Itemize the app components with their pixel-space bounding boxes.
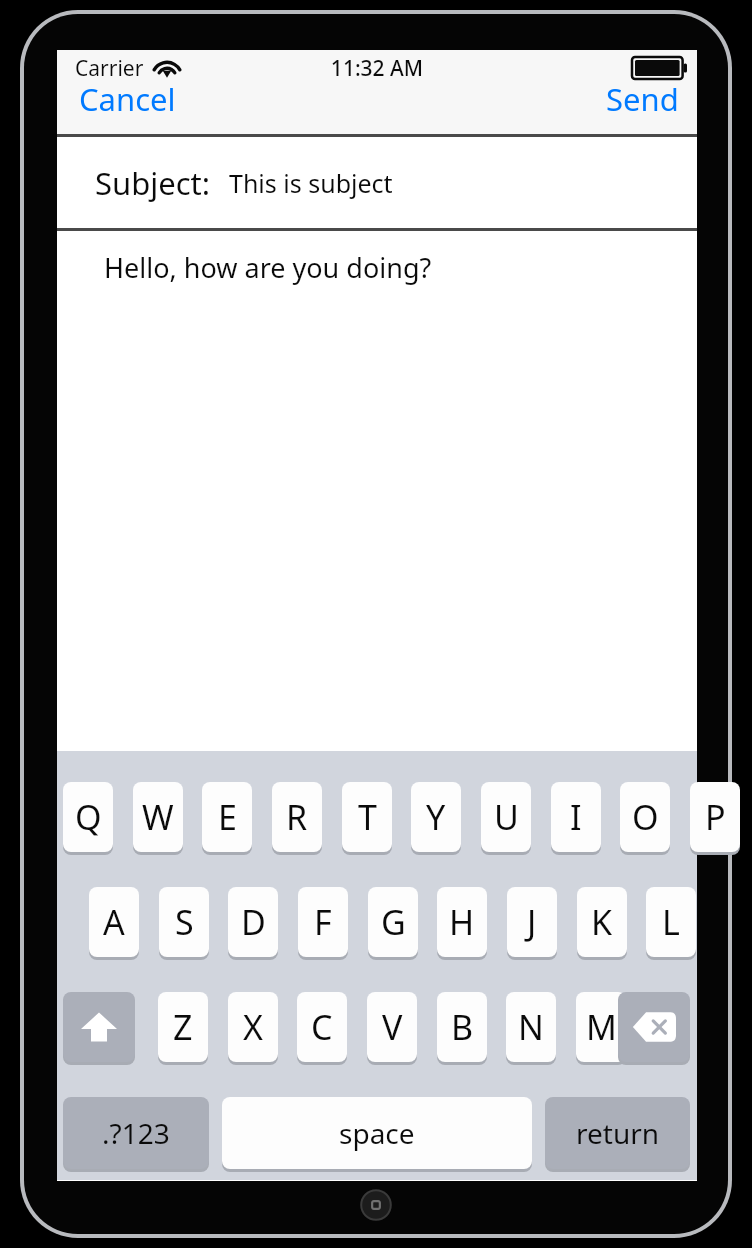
staticText: L: [662, 899, 680, 945]
staticText: N: [518, 1004, 544, 1050]
button[interactable]: V: [367, 992, 417, 1062]
staticText: .?123: [102, 1114, 170, 1152]
button[interactable]: G: [368, 887, 418, 957]
button[interactable]: Subject:: [57, 137, 697, 228]
staticText: S: [175, 899, 194, 945]
button[interactable]: Cancel: [75, 76, 180, 122]
staticText: U: [494, 794, 519, 840]
button[interactable]: F: [298, 887, 348, 957]
staticText: A: [103, 899, 125, 945]
staticText: Z: [173, 1004, 193, 1050]
button[interactable]: space: [222, 1097, 532, 1169]
button[interactable]: T: [342, 782, 392, 852]
staticText: Send: [606, 78, 679, 120]
button[interactable]: Q: [63, 782, 113, 852]
button[interactable]: Y: [411, 782, 461, 852]
staticText: 11:32 AM: [57, 54, 697, 83]
staticText: Carrier: [75, 54, 144, 83]
button[interactable]: L: [646, 887, 696, 957]
button[interactable]: I: [551, 782, 601, 852]
button[interactable]: C: [297, 992, 347, 1062]
button[interactable]: S: [159, 887, 209, 957]
staticText: Cancel: [79, 78, 176, 120]
staticText: J: [527, 899, 537, 945]
button[interactable]: K: [577, 887, 627, 957]
staticText: This is subject: [229, 166, 393, 200]
staticText: O: [632, 794, 659, 840]
staticText: D: [241, 899, 266, 945]
staticText: G: [381, 899, 406, 945]
button[interactable]: U: [481, 782, 531, 852]
button[interactable]: Send: [602, 76, 683, 122]
button[interactable]: .?123: [63, 1097, 209, 1169]
button[interactable]: Z: [158, 992, 208, 1062]
staticText: C: [311, 1004, 333, 1050]
staticText: X: [243, 1004, 263, 1050]
staticText: H: [449, 899, 475, 945]
button[interactable]: O: [620, 782, 670, 852]
button[interactable]: N: [506, 992, 556, 1062]
staticText: Y: [426, 794, 446, 840]
button[interactable]: B: [437, 992, 487, 1062]
staticText: B: [451, 1004, 474, 1050]
button[interactable]: W: [133, 782, 183, 852]
button[interactable]: Hello, how are you doing?: [57, 231, 697, 751]
button[interactable]: Delete: [618, 992, 690, 1062]
staticText: K: [591, 899, 613, 945]
button[interactable]: P: [690, 782, 740, 852]
staticText: F: [314, 899, 332, 945]
button[interactable]: A: [89, 887, 139, 957]
button[interactable]: X: [228, 992, 278, 1062]
staticText: Subject:: [95, 162, 211, 204]
other: Home: [347, 1176, 405, 1234]
button[interactable]: Shift: [63, 992, 135, 1062]
staticText: V: [382, 1004, 403, 1050]
staticText: E: [218, 794, 237, 840]
staticText: space: [339, 1114, 415, 1152]
staticText: return: [576, 1114, 660, 1152]
button[interactable]: return: [545, 1097, 690, 1169]
staticText: M: [586, 1004, 617, 1050]
button[interactable]: E: [202, 782, 252, 852]
staticText: T: [358, 794, 377, 840]
staticText: W: [142, 794, 174, 840]
staticText: Hello, how are you doing?: [104, 249, 432, 286]
button[interactable]: D: [228, 887, 278, 957]
button[interactable]: R: [272, 782, 322, 852]
staticText: I: [570, 794, 582, 840]
button[interactable]: M: [576, 992, 626, 1062]
staticText: Q: [75, 794, 102, 840]
staticText: P: [705, 794, 726, 840]
staticText: R: [286, 794, 308, 840]
button[interactable]: H: [437, 887, 487, 957]
button[interactable]: J: [507, 887, 557, 957]
